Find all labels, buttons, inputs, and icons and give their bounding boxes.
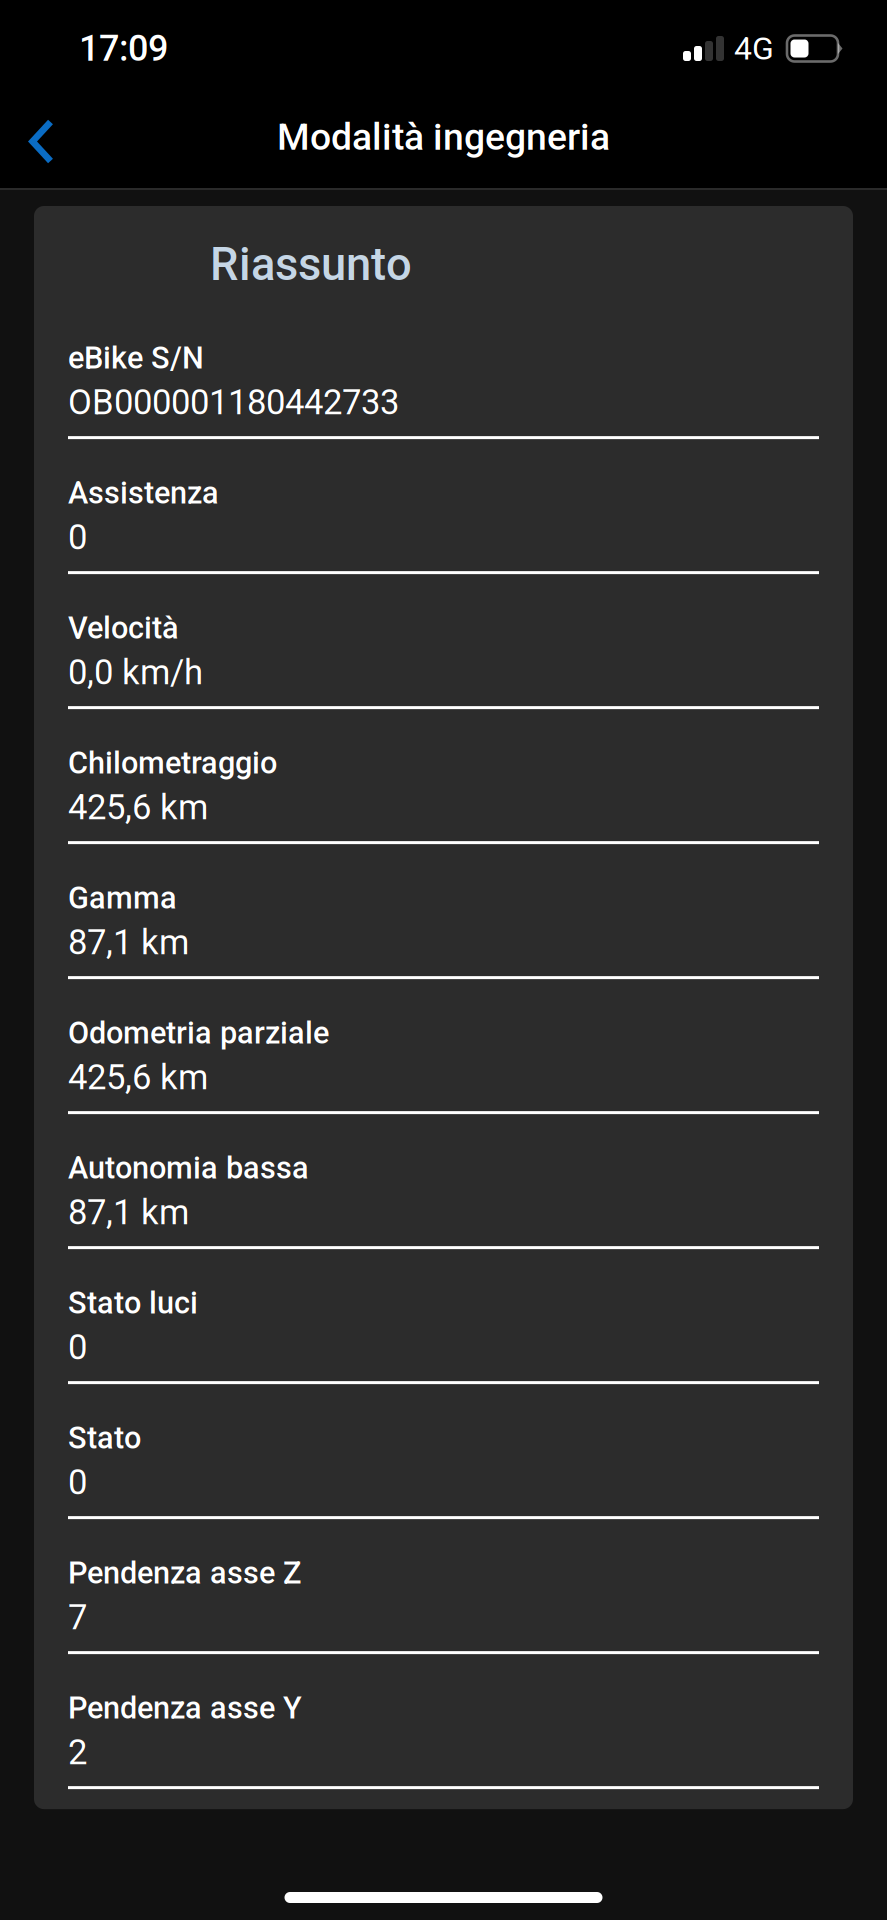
staticText: Chilometraggio bbox=[68, 745, 277, 781]
button[interactable]: Back bbox=[0, 90, 78, 188]
staticText: Stato luci bbox=[68, 1285, 198, 1321]
staticText: 87,1 km bbox=[68, 922, 189, 963]
staticText: 425,6 km bbox=[68, 787, 208, 828]
staticText: Odometria parziale bbox=[68, 1015, 329, 1051]
staticText: 0 bbox=[68, 1327, 87, 1368]
staticText: Gamma bbox=[68, 880, 177, 916]
staticText: 0,0 km/h bbox=[68, 652, 203, 693]
staticText: Pendenza asse Y bbox=[68, 1690, 302, 1726]
staticText: 4G bbox=[734, 30, 774, 67]
staticText: 87,1 km bbox=[68, 1192, 189, 1233]
staticText: 0 bbox=[68, 517, 87, 558]
staticText: Velocità bbox=[68, 610, 179, 646]
staticText: Autonomia bassa bbox=[68, 1150, 309, 1186]
staticText: 0 bbox=[68, 1462, 87, 1503]
staticText: Riassunto bbox=[210, 238, 412, 291]
staticText: 425,6 km bbox=[68, 1057, 208, 1098]
staticText: 7 bbox=[68, 1597, 87, 1638]
staticText: Modalità ingegneria bbox=[277, 115, 610, 159]
staticText: Stato bbox=[68, 1420, 141, 1456]
staticText: 17:09 bbox=[79, 27, 168, 70]
staticText: 2 bbox=[68, 1732, 87, 1773]
staticText: OB000001180442733 bbox=[68, 382, 399, 423]
staticText: Pendenza asse Z bbox=[68, 1555, 301, 1591]
staticText: eBike S/N bbox=[68, 340, 204, 376]
staticText: Assistenza bbox=[68, 475, 219, 511]
